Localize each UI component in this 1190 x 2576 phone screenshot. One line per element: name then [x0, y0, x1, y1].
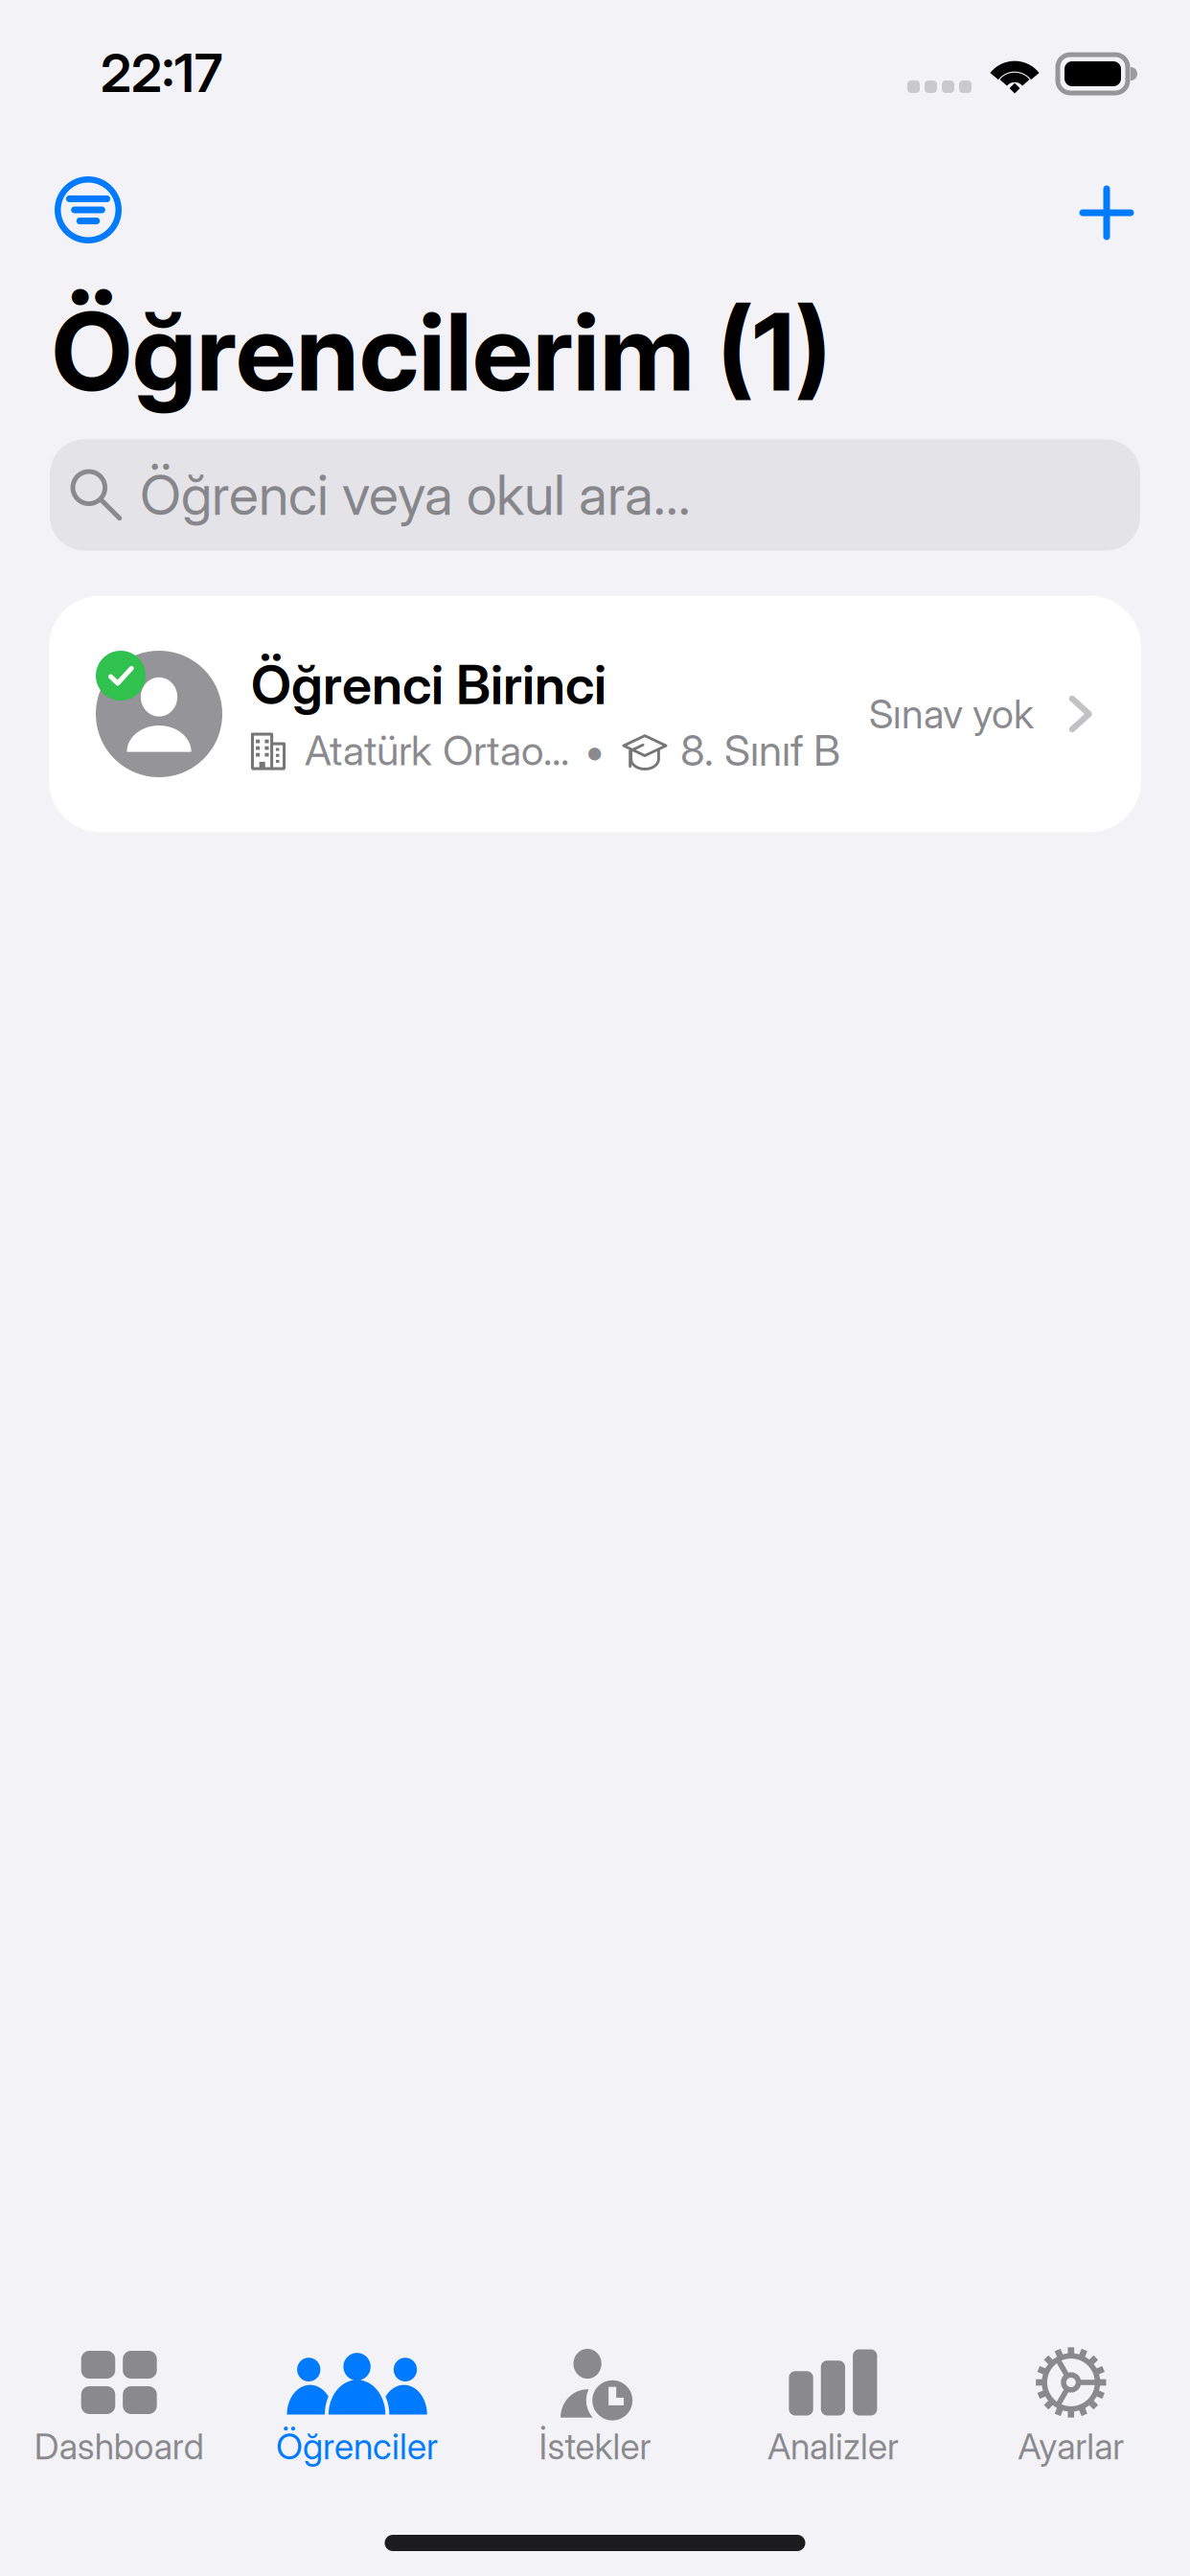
staticText: Analizler: [767, 2425, 899, 2468]
button[interactable]: Öğrenci Birinci: [49, 596, 1141, 832]
staticText: Ayarlar: [1018, 2425, 1124, 2468]
staticText: Öğrencilerim (1): [52, 287, 831, 416]
staticText: •: [584, 726, 605, 775]
button[interactable]: İstekler: [476, 2343, 714, 2508]
staticText: Sınav yok: [869, 690, 1034, 738]
button[interactable]: Öğrenci ekle: [1046, 141, 1167, 237]
staticText: İstekler: [539, 2425, 651, 2468]
button[interactable]: Öğrenciler: [238, 2343, 476, 2508]
staticText: Öğrenci veya okul ara...: [140, 462, 691, 528]
button[interactable]: Analizler: [714, 2343, 952, 2508]
staticText: Atatürk Ortao...: [305, 726, 569, 775]
button[interactable]: Öğrenci veya okul ara...: [50, 439, 1140, 551]
button[interactable]: Filtrele: [28, 134, 149, 243]
staticText: Öğrenciler: [276, 2425, 438, 2468]
staticText: 8. Sınıf B: [680, 725, 840, 776]
staticText: Dashboard: [34, 2425, 204, 2468]
button[interactable]: Dashboard: [0, 2343, 238, 2508]
staticText: Öğrenci Birinci: [251, 652, 606, 717]
button[interactable]: Ayarlar: [952, 2343, 1190, 2508]
staticText: 22:17: [101, 41, 222, 105]
